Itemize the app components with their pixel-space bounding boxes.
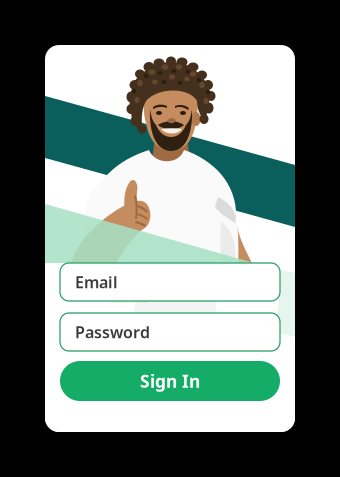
button[interactable]: Email xyxy=(60,263,280,301)
staticText: Email xyxy=(75,271,118,293)
staticText: Password xyxy=(75,321,150,343)
staticText: Sign In xyxy=(140,369,200,392)
button[interactable]: Password xyxy=(60,313,280,351)
button[interactable]: Sign In xyxy=(60,361,280,401)
